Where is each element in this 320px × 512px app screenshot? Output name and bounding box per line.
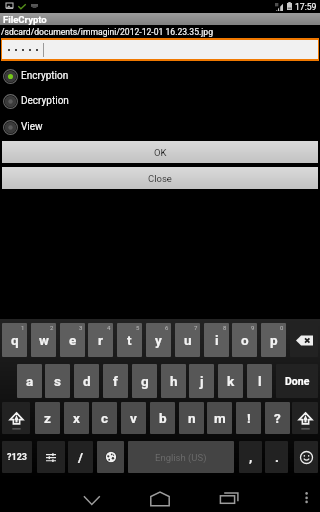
button[interactable]: Done [276, 364, 318, 398]
other: Emoji [300, 451, 313, 464]
button[interactable]: Encryption [0, 63, 320, 89]
staticText: h [170, 373, 178, 389]
button[interactable]: b [150, 402, 175, 434]
button[interactable]: c [92, 402, 117, 434]
staticText: z [44, 410, 51, 426]
staticText: ! [247, 410, 251, 426]
button[interactable]: p [261, 323, 286, 357]
staticText: Encryption [21, 70, 69, 82]
staticText: /sdcard/documents/immagini/2012-12-01 16… [1, 27, 213, 37]
button[interactable]: d [74, 364, 99, 398]
other: Settings [46, 453, 56, 462]
button[interactable]: ?123 [2, 441, 32, 473]
staticText: / [78, 449, 84, 465]
staticText: 4 [107, 324, 111, 331]
staticText: c [101, 410, 109, 426]
button[interactable]: q [2, 323, 27, 357]
button[interactable]: g [132, 364, 157, 398]
button[interactable]: , [239, 441, 262, 473]
button[interactable]: Shift [2, 402, 30, 434]
other: Shift [10, 407, 23, 429]
button[interactable]: i [204, 323, 229, 357]
staticText: b [159, 410, 167, 426]
button[interactable]: View [0, 114, 320, 140]
staticText: x [73, 410, 80, 426]
staticText: t [127, 332, 132, 348]
staticText: View [21, 121, 43, 133]
staticText: 8 [223, 324, 227, 331]
button[interactable]: ? [265, 402, 290, 434]
button[interactable]: y [146, 323, 171, 357]
button[interactable]: k [218, 364, 243, 398]
staticText: 0 [280, 324, 284, 331]
button[interactable]: Home [140, 482, 180, 512]
staticText: 6 [165, 324, 169, 331]
staticText: 5 [136, 324, 140, 331]
button[interactable]: Recent apps [210, 482, 250, 512]
staticText: f [113, 373, 118, 389]
button[interactable]: Settings [37, 441, 65, 473]
staticText: FileCrypto [3, 14, 47, 25]
button[interactable]: s [45, 364, 70, 398]
button[interactable]: t [117, 323, 142, 357]
button[interactable]: z [35, 402, 60, 434]
button[interactable]: / [68, 441, 93, 473]
staticText: p [270, 332, 278, 348]
button[interactable]: j [189, 364, 214, 398]
button[interactable]: o [232, 323, 257, 357]
button[interactable]: a [17, 364, 42, 398]
button[interactable]: v [121, 402, 146, 434]
staticText: j [200, 373, 204, 389]
button[interactable]: r [88, 323, 113, 357]
staticText: l [258, 373, 262, 389]
button[interactable]: OK [2, 141, 318, 163]
staticText: OK [154, 147, 167, 158]
button[interactable]: n [179, 402, 204, 434]
staticText: 2 [50, 324, 54, 331]
staticText: o [241, 332, 249, 348]
other: Shift [299, 407, 312, 429]
button[interactable]: . [265, 441, 288, 473]
button[interactable]: Shift [292, 402, 318, 434]
button[interactable]: More options [294, 482, 320, 512]
staticText: w [39, 332, 49, 348]
button[interactable]: ! [236, 402, 261, 434]
button[interactable] [2, 40, 318, 59]
staticText: u [184, 332, 192, 348]
staticText: 9 [251, 324, 255, 331]
button[interactable]: l [247, 364, 272, 398]
staticText: a [26, 373, 34, 389]
staticText: English (US) [155, 452, 207, 463]
button[interactable]: Hide keyboard [70, 482, 114, 512]
staticText: d [83, 373, 91, 389]
staticText: e [69, 332, 77, 348]
staticText: . [275, 449, 279, 465]
staticText: n [188, 410, 196, 426]
button[interactable]: Close [2, 167, 318, 189]
staticText: 7 [194, 324, 198, 331]
button[interactable]: Decryption [0, 88, 320, 114]
button[interactable]: m [207, 402, 232, 434]
staticText: g [141, 373, 149, 389]
staticText: ?123 [7, 452, 27, 463]
button[interactable]: w [31, 323, 56, 357]
button[interactable]: f [103, 364, 128, 398]
button[interactable]: Change language [97, 441, 124, 473]
button[interactable]: u [175, 323, 200, 357]
staticText: m [214, 410, 226, 426]
button[interactable]: e [60, 323, 85, 357]
other: Backspace [296, 335, 313, 346]
other: Change language [105, 451, 117, 463]
staticText: v [130, 410, 137, 426]
staticText: Close [148, 173, 172, 184]
button[interactable]: Backspace [290, 323, 318, 357]
staticText: k [227, 373, 235, 389]
button[interactable]: Emoji [294, 441, 318, 473]
staticText: Decryption [21, 95, 69, 107]
button[interactable]: x [64, 402, 89, 434]
staticText: i [215, 332, 219, 348]
button[interactable]: h [161, 364, 186, 398]
staticText: y [155, 332, 162, 348]
staticText: q [11, 332, 19, 348]
button[interactable]: English (US) [128, 441, 234, 473]
